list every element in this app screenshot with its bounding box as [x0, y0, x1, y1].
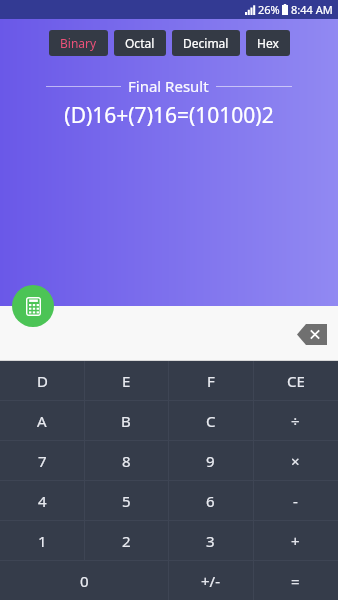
button[interactable]: 2 [84, 521, 168, 560]
button[interactable]: D [0, 361, 84, 400]
button[interactable]: 4 [0, 481, 84, 520]
button[interactable]: Binary [49, 30, 108, 56]
button[interactable]: 1 [0, 521, 84, 560]
staticText: E [122, 371, 131, 391]
button[interactable]: Octal [114, 30, 166, 56]
staticText: 3 [206, 531, 215, 551]
staticText: 8 [122, 451, 131, 471]
staticText: 26% [258, 2, 280, 17]
button[interactable]: 8 [84, 441, 168, 480]
staticText: 2 [122, 531, 131, 551]
staticText: Hex [257, 35, 279, 51]
button[interactable]: 7 [0, 441, 84, 480]
staticText: +/- [201, 571, 220, 591]
button[interactable]: × [253, 441, 338, 480]
button[interactable]: 6 [168, 481, 253, 520]
staticText: B [121, 411, 131, 431]
staticText: Octal [125, 35, 155, 51]
button[interactable]: E [84, 361, 168, 400]
staticText: = [291, 571, 300, 591]
button[interactable]: A [0, 401, 84, 440]
staticText: Binary [60, 35, 97, 51]
staticText: 4 [38, 491, 47, 511]
staticText: 5 [122, 491, 131, 511]
button[interactable]: F [168, 361, 253, 400]
button[interactable]: = [253, 561, 338, 600]
staticText: ÷ [291, 411, 300, 431]
staticText: Final Result [128, 76, 209, 96]
staticText: + [291, 531, 300, 551]
button[interactable]: Backspace [296, 323, 328, 345]
button[interactable]: Hex [246, 30, 290, 56]
staticText: 9 [206, 451, 215, 471]
button[interactable]: + [253, 521, 338, 560]
staticText: 1 [38, 531, 47, 551]
button[interactable]: Calculator [12, 285, 54, 327]
staticText: CE [287, 371, 305, 391]
staticText: - [293, 491, 298, 511]
button[interactable]: B [84, 401, 168, 440]
staticText: (D)16+(7)16=(10100)2 [64, 101, 274, 130]
button[interactable]: ÷ [253, 401, 338, 440]
staticText: D [37, 371, 48, 391]
button[interactable]: C [168, 401, 253, 440]
staticText: 7 [38, 451, 47, 471]
staticText: 8:44 AM [291, 2, 333, 17]
button[interactable]: 0 [0, 561, 168, 600]
staticText: A [37, 411, 47, 431]
button[interactable]: - [253, 481, 338, 520]
button[interactable]: 9 [168, 441, 253, 480]
staticText: 0 [80, 571, 89, 591]
staticText: F [207, 371, 215, 391]
staticText: 6 [206, 491, 215, 511]
staticText: C [206, 411, 216, 431]
button[interactable]: 5 [84, 481, 168, 520]
staticText: Decimal [183, 35, 229, 51]
button[interactable]: +/- [168, 561, 253, 600]
button[interactable]: Decimal [172, 30, 240, 56]
button[interactable]: CE [253, 361, 338, 400]
button[interactable]: 3 [168, 521, 253, 560]
staticText: × [291, 451, 300, 471]
